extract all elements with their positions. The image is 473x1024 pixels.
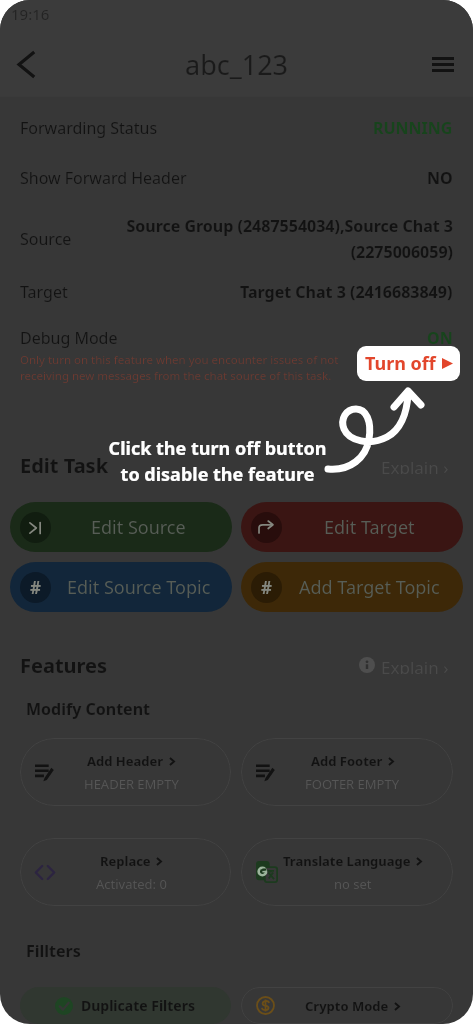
staticText: abc_123 — [185, 46, 289, 83]
button[interactable]: Duplicate Filters — [20, 987, 231, 1024]
staticText: Explain › — [381, 656, 449, 674]
button[interactable]: Menu — [425, 32, 461, 96]
staticText: Duplicate Filters — [81, 996, 196, 1015]
staticText: Add Target Topic — [299, 575, 440, 600]
staticText: RUNNING — [373, 117, 453, 139]
button[interactable]: Show Forward Header — [0, 153, 473, 203]
staticText: 19:16 — [11, 4, 50, 24]
staticText: # — [30, 576, 41, 599]
button[interactable]: Forwarding Status — [0, 103, 473, 153]
staticText: Source Group (2487554034),Source Chat 3 … — [78, 215, 453, 263]
button[interactable]: Crypto Mode — [241, 987, 453, 1024]
button[interactable]: Debug Mode — [0, 309, 473, 389]
staticText: NO — [427, 167, 453, 189]
staticText: Target Chat 3 (2416683849) — [240, 281, 453, 303]
staticText: ON — [427, 327, 453, 349]
staticText: Debug Mode — [20, 327, 118, 349]
button[interactable]: Add Header — [20, 738, 231, 806]
staticText: Only turn on this feature when you encou… — [20, 352, 358, 383]
staticText: Add Header — [87, 752, 164, 770]
button[interactable]: Add Footer — [241, 738, 453, 806]
button[interactable]: # — [241, 562, 463, 612]
staticText: Replace — [100, 852, 151, 870]
button[interactable]: Explain › — [355, 652, 453, 678]
staticText: # — [261, 576, 272, 599]
staticText: Edit Target — [324, 515, 415, 540]
button[interactable]: Edit Source — [10, 502, 232, 552]
staticText: Source — [20, 228, 72, 250]
button[interactable]: Target — [0, 275, 473, 309]
staticText: Modify Content — [26, 698, 150, 720]
staticText: FOOTER EMPTY — [305, 775, 400, 793]
staticText: Edit Source Topic — [67, 575, 211, 600]
button[interactable]: Translate Language — [241, 838, 453, 906]
staticText: Activated: 0 — [96, 875, 167, 893]
button[interactable]: Source — [0, 203, 473, 275]
staticText: Edit Task — [20, 452, 109, 478]
button[interactable]: Back — [8, 32, 44, 96]
staticText: Features — [20, 652, 108, 678]
staticText: Turn off — [365, 351, 436, 376]
button[interactable]: Edit Target — [241, 502, 463, 552]
staticText: Forwarding Status — [20, 117, 158, 139]
staticText: Target — [20, 281, 68, 303]
button[interactable]: Replace — [20, 838, 231, 906]
staticText: Crypto Mode — [305, 997, 389, 1015]
staticText: Show Forward Header — [20, 167, 187, 189]
staticText: Click the turn off button to disable the… — [100, 436, 335, 486]
staticText: HEADER EMPTY — [84, 775, 179, 793]
staticText: Add Footer — [311, 752, 383, 770]
staticText: Translate Language — [283, 852, 411, 870]
button[interactable]: Explain › — [377, 452, 453, 478]
staticText: no set — [334, 875, 372, 893]
button[interactable]: Turn off — [357, 346, 460, 381]
staticText: Edit Source — [91, 515, 186, 540]
button[interactable]: # — [10, 562, 232, 612]
staticText: Fillters — [26, 940, 81, 962]
staticText: Explain › — [381, 456, 449, 474]
